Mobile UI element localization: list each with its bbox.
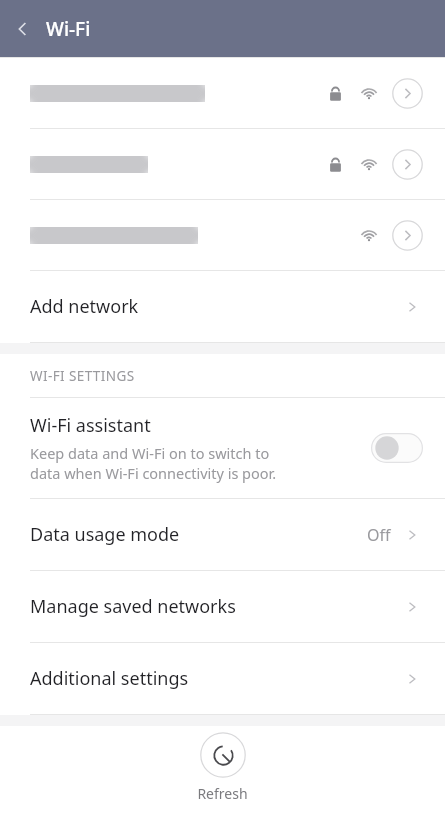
staticText: Keep data and Wi-Fi on to switch to data… (30, 443, 277, 483)
button[interactable]: Refresh (179, 726, 266, 809)
staticText: Manage saved networks (30, 594, 236, 619)
button[interactable]: Additional settings (0, 643, 445, 714)
button[interactable]: Network details (0, 129, 445, 199)
button[interactable]: Manage saved networks (0, 571, 445, 642)
staticText: Wi-Fi (46, 16, 91, 42)
button[interactable]: Network details (392, 220, 423, 251)
staticText: Additional settings (30, 666, 189, 691)
button[interactable]: Network details (0, 58, 445, 128)
button[interactable]: Wi-Fi assistant (0, 398, 445, 498)
staticText: Add network (30, 294, 139, 319)
staticText: Wi-Fi assistant (30, 413, 151, 438)
button[interactable]: Network details (0, 200, 445, 270)
staticText: Refresh (197, 784, 248, 803)
button[interactable]: Back (0, 6, 46, 52)
button[interactable]: Network details (392, 78, 423, 109)
button[interactable]: Data usage mode (0, 499, 445, 570)
staticText: WI-FI SETTINGS (30, 367, 135, 385)
button[interactable]: Wi-Fi assistant toggle (371, 433, 423, 463)
button[interactable]: Network details (392, 149, 423, 180)
button[interactable]: Add network (0, 271, 445, 342)
staticText: Data usage mode (30, 522, 180, 547)
staticText: Off (367, 524, 391, 546)
